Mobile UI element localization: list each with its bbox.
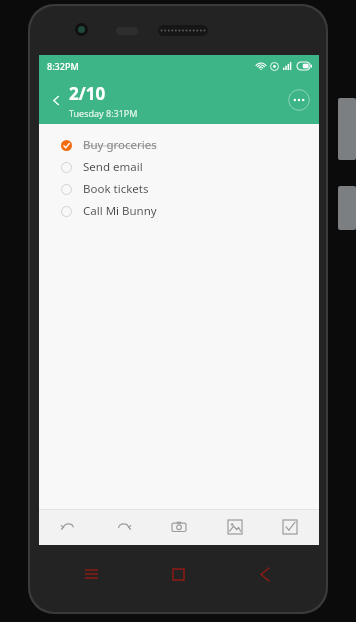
staticText: 8:32PM: [47, 60, 79, 72]
staticText: Buy groceries: [83, 137, 157, 153]
button[interactable]: Book tickets: [39, 178, 319, 200]
button[interactable]: Camera: [164, 512, 194, 542]
staticText: 2/10: [69, 82, 106, 105]
button[interactable]: Send email: [39, 156, 319, 178]
button[interactable]: Checklist: [275, 512, 305, 542]
button[interactable]: Back: [47, 91, 65, 109]
button[interactable]: Call Mi Bunny: [39, 200, 319, 222]
button[interactable]: Insert image: [220, 512, 250, 542]
staticText: Book tickets: [83, 181, 149, 197]
staticText: Tuesday 8:31PM: [69, 107, 138, 119]
button[interactable]: Undo: [53, 512, 83, 542]
button[interactable]: Buy groceries: [39, 134, 319, 156]
staticText: Send email: [83, 159, 143, 175]
button[interactable]: Redo: [109, 512, 139, 542]
button[interactable]: Back: [250, 559, 280, 589]
button[interactable]: Menu: [76, 559, 106, 589]
staticText: Call Mi Bunny: [83, 203, 157, 219]
button[interactable]: More options: [288, 89, 310, 111]
button[interactable]: Home: [163, 559, 193, 589]
